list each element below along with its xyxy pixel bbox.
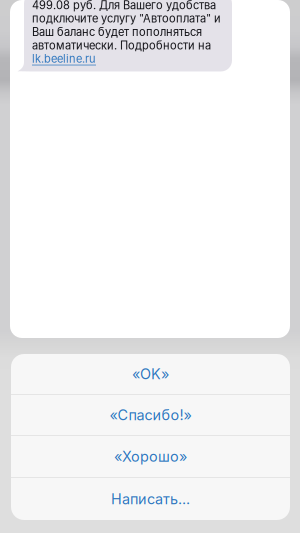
staticText: «Хорошо» <box>114 448 187 465</box>
button[interactable]: Написать... <box>11 478 290 520</box>
button[interactable]: «Хорошо» <box>11 436 290 477</box>
staticText: lk.beeline.ru <box>32 52 96 65</box>
staticText: «OK» <box>132 365 169 383</box>
staticText: 499.08 руб. Для Вашего удобства подключи… <box>32 0 221 52</box>
button[interactable]: «Спасибо!» <box>11 395 290 435</box>
staticText: «Спасибо!» <box>109 406 191 424</box>
button[interactable]: «OK» <box>11 354 290 394</box>
staticText: Написать... <box>111 490 190 508</box>
